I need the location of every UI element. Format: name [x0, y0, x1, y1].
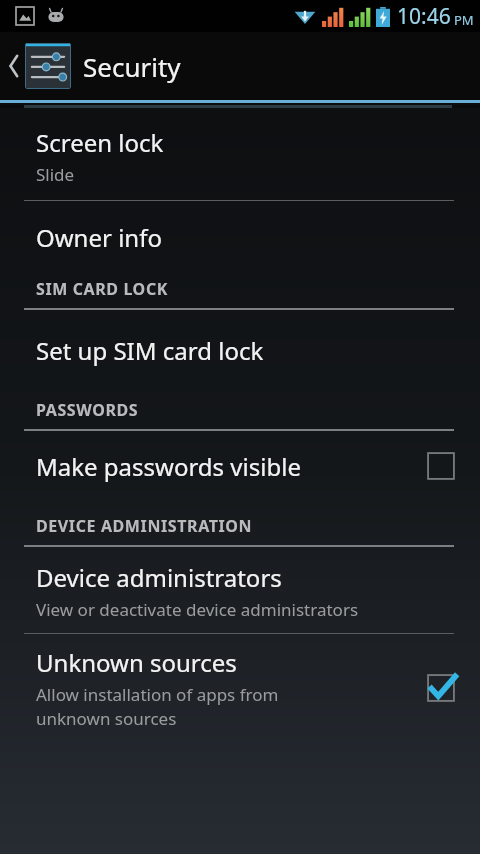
staticText: Make passwords visible	[36, 450, 301, 483]
staticText: Owner info	[36, 221, 162, 254]
staticText: PM	[454, 11, 474, 29]
staticText: Slide	[36, 163, 75, 186]
staticText: SIM CARD LOCK	[36, 278, 168, 300]
staticText: Set up SIM card lock	[36, 334, 264, 367]
button[interactable]: Unknown sources	[0, 642, 480, 734]
button[interactable]: Set up SIM card lock	[0, 332, 480, 369]
button[interactable]: Screen lock	[0, 124, 480, 188]
staticText: Unknown sources	[36, 646, 237, 679]
staticText: DEVICE ADMINISTRATION	[36, 515, 253, 537]
staticText: Device administrators	[36, 561, 282, 594]
staticText: PASSWORDS	[36, 399, 139, 421]
button[interactable]: Owner info	[0, 219, 480, 256]
staticText: Allow installation of apps from unknown …	[36, 683, 279, 730]
staticText: 10:46	[397, 2, 451, 31]
staticText: Security	[83, 49, 181, 84]
button[interactable]: Navigate up	[0, 32, 480, 100]
button[interactable]: Device administrators	[0, 559, 480, 623]
button[interactable]: Make passwords visible	[0, 445, 480, 487]
staticText: View or deactivate device administrators	[36, 598, 359, 621]
staticText: Screen lock	[36, 126, 164, 159]
